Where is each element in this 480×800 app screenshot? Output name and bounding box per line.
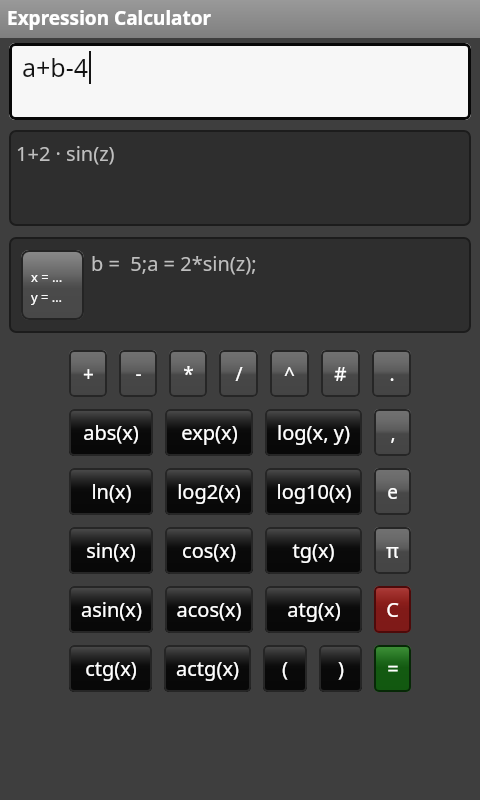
staticText: / (235, 361, 243, 387)
button[interactable]: x = … (21, 250, 84, 320)
staticText: ) (338, 655, 344, 682)
button[interactable]: asin(x) (69, 586, 153, 633)
staticText: actg(x) (176, 655, 239, 682)
button[interactable]: Comma (374, 409, 411, 456)
staticText: ( (282, 655, 288, 682)
staticText: exp(x) (181, 419, 238, 446)
staticText: abs(x) (83, 419, 139, 446)
staticText: asin(x) (81, 596, 142, 623)
button[interactable]: Decimal point (372, 350, 411, 397)
staticText: * (183, 361, 194, 387)
staticText: tg(x) (292, 537, 335, 564)
button[interactable]: Number sign (321, 350, 360, 397)
button[interactable]: acos(x) (165, 586, 253, 633)
button[interactable]: Multiply (169, 350, 207, 397)
button[interactable]: log10(x) (265, 468, 362, 515)
staticText: cos(x) (182, 537, 236, 564)
button[interactable]: Pi (374, 527, 411, 574)
staticText: + (83, 361, 94, 387)
staticText: log2(x) (177, 478, 241, 505)
staticText: log(x, y) (277, 419, 350, 446)
button[interactable]: Plus (69, 350, 107, 397)
button[interactable]: Close parenthesis (319, 645, 362, 692)
button[interactable]: Equals (374, 645, 411, 692)
button[interactable]: sin(x) (69, 527, 153, 574)
button[interactable]: exp(x) (165, 409, 253, 456)
button[interactable]: Divide (219, 350, 258, 397)
button[interactable]: log2(x) (165, 468, 253, 515)
button[interactable]: atg(x) (265, 586, 362, 633)
staticText: - (135, 361, 142, 387)
staticText: Expression Calculator (7, 5, 212, 31)
button[interactable]: Open parenthesis (263, 645, 307, 692)
staticText: log10(x) (276, 478, 352, 505)
staticText: atg(x) (287, 596, 341, 623)
staticText: e (387, 479, 398, 505)
staticText: π (386, 538, 399, 564)
staticText: acos(x) (176, 596, 242, 623)
staticText: x = … (31, 268, 63, 286)
staticText: . (389, 361, 395, 387)
staticText: ln(x) (91, 478, 132, 505)
button[interactable]: tg(x) (265, 527, 362, 574)
button[interactable]: cos(x) (165, 527, 253, 574)
button[interactable]: actg(x) (164, 645, 251, 692)
staticText: sin(x) (86, 537, 136, 564)
button[interactable]: Clear (374, 586, 411, 633)
button[interactable]: a+b-4 (9, 43, 471, 120)
staticText: # (334, 361, 347, 387)
staticText: a+b-4 (22, 50, 89, 84)
button[interactable]: abs(x) (69, 409, 153, 456)
button[interactable]: log(x, y) (265, 409, 362, 456)
staticText: ctg(x) (85, 655, 137, 682)
staticText: 1+2 · sin(z) (16, 140, 115, 167)
button[interactable]: Power (270, 350, 309, 397)
staticText: = (387, 655, 399, 682)
staticText: C (386, 596, 399, 623)
button[interactable]: ln(x) (69, 468, 153, 515)
staticText: b = 5;a = 2*sin(z); (91, 250, 257, 277)
button[interactable]: ctg(x) (69, 645, 152, 692)
button[interactable]: 1+2 · sin(z) (9, 130, 471, 226)
button[interactable]: Minus (119, 350, 157, 397)
staticText: ^ (284, 361, 295, 387)
button[interactable]: Euler constant e (374, 468, 411, 515)
staticText: y = … (31, 288, 63, 306)
staticText: , (390, 420, 396, 446)
